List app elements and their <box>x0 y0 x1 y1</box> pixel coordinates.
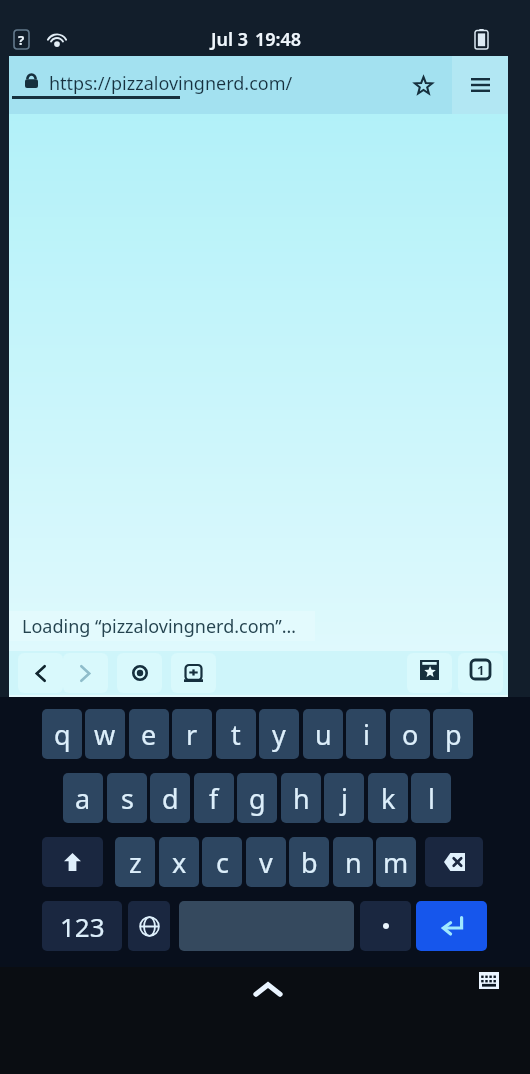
button[interactable]: Bookmark <box>399 56 447 114</box>
button[interactable]: n <box>333 837 373 887</box>
button[interactable]: Back <box>18 653 63 693</box>
staticText: 123 <box>60 909 105 944</box>
button[interactable]: https://pizzalovingnerd.com/ <box>9 56 399 114</box>
staticText: h <box>293 780 310 817</box>
button[interactable]: Tabs <box>458 653 503 693</box>
button[interactable]: a <box>63 773 103 823</box>
staticText: k <box>381 780 396 817</box>
button[interactable]: z <box>115 837 155 887</box>
button[interactable]: r <box>172 709 212 759</box>
button[interactable]: Backspace <box>425 837 483 887</box>
button[interactable]: Period <box>360 901 411 951</box>
button[interactable]: c <box>202 837 242 887</box>
staticText: q <box>54 716 71 753</box>
staticText: s <box>121 780 134 817</box>
staticText: a <box>75 780 91 817</box>
staticText: l <box>428 780 435 817</box>
button[interactable]: v <box>246 837 286 887</box>
staticText: m <box>383 844 409 881</box>
staticText: d <box>162 780 179 817</box>
staticText: x <box>172 844 187 881</box>
staticText: v <box>259 844 273 881</box>
button[interactable]: Space <box>179 901 354 951</box>
staticText: https://pizzalovingnerd.com/ <box>49 71 293 96</box>
button[interactable]: q <box>42 709 82 759</box>
button[interactable]: o <box>390 709 430 759</box>
button[interactable]: Stop loading <box>117 653 162 693</box>
button[interactable]: b <box>289 837 329 887</box>
staticText: i <box>363 716 370 753</box>
button[interactable]: h <box>281 773 321 823</box>
staticText: p <box>445 716 462 753</box>
staticText: u <box>315 716 332 753</box>
button[interactable]: Bookmarks <box>407 653 452 693</box>
button[interactable]: Switch keyboard <box>469 960 509 1000</box>
button[interactable]: Shift <box>42 837 103 887</box>
button[interactable]: t <box>216 709 256 759</box>
staticText: w <box>94 716 116 753</box>
staticText: o <box>402 716 419 753</box>
button[interactable]: j <box>324 773 364 823</box>
button[interactable]: x <box>159 837 199 887</box>
staticText: j <box>341 780 348 817</box>
staticText: Jul 3 <box>211 27 249 52</box>
button[interactable]: d <box>150 773 190 823</box>
staticText: 1 <box>477 661 485 679</box>
button[interactable]: e <box>129 709 169 759</box>
staticText: Loading “pizzalovingnerd.com”… <box>22 614 296 639</box>
button[interactable]: Menu <box>452 56 508 114</box>
staticText: ? <box>18 31 25 49</box>
button[interactable]: Enter <box>416 901 487 951</box>
button[interactable]: y <box>259 709 299 759</box>
staticText: e <box>141 716 157 753</box>
staticText: b <box>301 844 318 881</box>
button[interactable]: m <box>376 837 416 887</box>
button[interactable]: 123 <box>42 901 122 951</box>
button[interactable]: i <box>346 709 386 759</box>
button[interactable]: g <box>237 773 277 823</box>
button[interactable]: k <box>368 773 408 823</box>
staticText: f <box>209 780 219 817</box>
button[interactable]: s <box>107 773 147 823</box>
staticText: r <box>186 716 198 753</box>
button[interactable]: w <box>85 709 125 759</box>
button[interactable]: Hide keyboard <box>240 969 296 1009</box>
staticText: t <box>231 716 241 753</box>
button[interactable]: New tab <box>171 653 216 693</box>
staticText: 19:48 <box>255 27 302 52</box>
button[interactable]: p <box>433 709 473 759</box>
staticText: z <box>129 844 142 881</box>
button[interactable]: Change language <box>128 901 170 951</box>
button[interactable]: Forward <box>63 653 108 693</box>
staticText: n <box>345 844 362 881</box>
button[interactable]: l <box>411 773 451 823</box>
staticText: y <box>272 716 286 753</box>
staticText: g <box>249 780 266 817</box>
button[interactable]: f <box>194 773 234 823</box>
staticText: c <box>216 844 229 881</box>
button[interactable]: u <box>303 709 343 759</box>
